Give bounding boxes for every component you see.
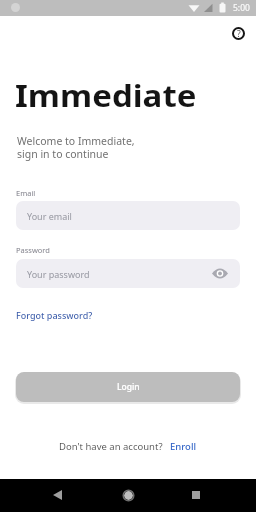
staticText: Don't have an account? (59, 440, 163, 453)
button[interactable]: Login (16, 372, 240, 402)
staticText: Immediate (15, 75, 196, 116)
button[interactable] (183, 482, 209, 508)
staticText: Your password (27, 268, 90, 280)
staticText: ? (237, 28, 241, 40)
staticText: 5:00 (233, 2, 250, 14)
staticText: Welcome to Immediate, sign in to continu… (17, 134, 135, 161)
button[interactable]: Your password (16, 259, 240, 288)
staticText: Your email (27, 210, 72, 222)
button[interactable]: ? (230, 25, 246, 41)
staticText: Email (16, 188, 36, 198)
button[interactable]: Forgot password? (16, 309, 93, 321)
button[interactable] (115, 482, 141, 508)
staticText: Login (117, 381, 140, 393)
button[interactable] (44, 482, 70, 508)
button[interactable]: Enroll (170, 440, 197, 453)
button[interactable]: Your email (16, 201, 240, 230)
staticText: Password (16, 245, 50, 255)
